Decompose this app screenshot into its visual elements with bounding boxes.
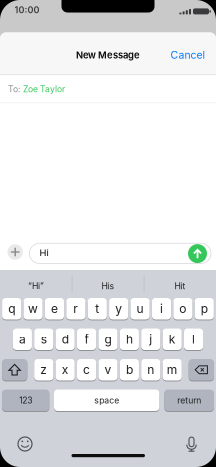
staticText: p: [201, 301, 208, 316]
staticText: r: [73, 301, 78, 316]
staticText: e: [51, 301, 58, 316]
staticText: To:: [8, 84, 20, 94]
staticText: a: [19, 332, 26, 346]
staticText: x: [62, 362, 69, 377]
staticText: d: [62, 332, 69, 346]
staticText: j: [149, 332, 152, 346]
staticText: “Hi”: [28, 281, 44, 291]
staticText: Hi: [39, 247, 48, 259]
staticText: w: [28, 301, 38, 316]
staticText: 123: [19, 395, 32, 405]
staticText: return: [177, 395, 201, 405]
staticText: k: [169, 332, 176, 346]
staticText: Zoe Taylor: [23, 84, 65, 94]
staticText: h: [126, 332, 133, 346]
staticText: u: [137, 301, 144, 316]
staticText: Cancel: [170, 49, 205, 61]
staticText: l: [192, 332, 195, 346]
staticText: b: [126, 362, 133, 377]
staticText: space: [94, 395, 119, 405]
staticText: 10:00: [14, 4, 39, 15]
staticText: g: [104, 332, 111, 346]
staticText: o: [179, 301, 186, 316]
staticText: q: [8, 301, 15, 316]
staticText: New Message: [76, 49, 140, 61]
staticText: z: [40, 362, 47, 377]
staticText: v: [104, 362, 111, 377]
staticText: His: [101, 281, 114, 291]
staticText: c: [83, 362, 90, 377]
staticText: m: [167, 362, 178, 377]
staticText: f: [85, 332, 89, 346]
staticText: t: [95, 301, 99, 316]
staticText: Hit: [174, 281, 185, 291]
staticText: y: [115, 301, 122, 316]
staticText: s: [41, 332, 47, 346]
staticText: n: [147, 362, 154, 377]
staticText: i: [160, 301, 163, 316]
